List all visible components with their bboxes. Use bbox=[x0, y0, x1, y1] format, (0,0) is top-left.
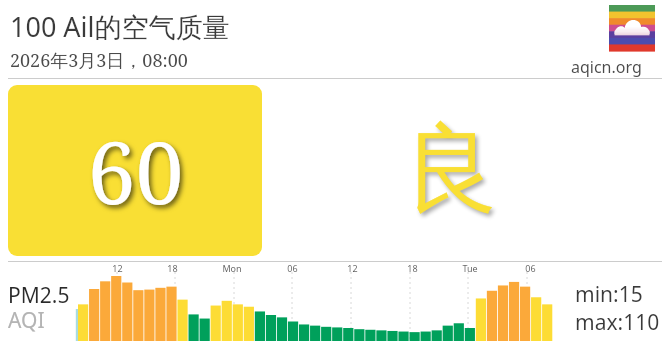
staticText: min:15 bbox=[575, 280, 643, 309]
staticText: 12 bbox=[347, 262, 358, 274]
staticText: 18 bbox=[407, 262, 418, 274]
staticText: 良 bbox=[403, 110, 499, 231]
staticText: 2026年3月3日，08:00 bbox=[10, 48, 188, 73]
staticText: max:110 bbox=[575, 308, 660, 337]
button[interactable]: 60 bbox=[8, 85, 262, 256]
staticText: 60 bbox=[87, 112, 184, 229]
staticText: 12 bbox=[112, 262, 123, 274]
staticText: 06 bbox=[525, 262, 536, 274]
staticText: Mon bbox=[222, 262, 242, 274]
button[interactable]: aqicn.org logo bbox=[609, 5, 655, 51]
staticText: Tue bbox=[462, 262, 478, 274]
staticText: AQI bbox=[8, 306, 45, 335]
staticText: PM2.5 bbox=[8, 281, 70, 310]
staticText: 06 bbox=[287, 262, 298, 274]
button[interactable]: aqicn.org bbox=[571, 56, 642, 78]
staticText: 100 Ail的空气质量 bbox=[10, 8, 230, 45]
staticText: 18 bbox=[167, 262, 178, 274]
